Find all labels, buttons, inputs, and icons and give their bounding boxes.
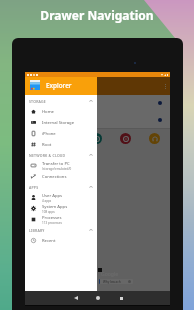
staticText: Connections bbox=[42, 174, 67, 180]
staticText: Explorer bbox=[46, 81, 72, 90]
button[interactable]: Back bbox=[67, 291, 85, 305]
button[interactable]: Recent apps bbox=[112, 291, 130, 305]
staticText: LIBRARY bbox=[29, 228, 45, 233]
staticText: 2.0 GB bbox=[29, 118, 39, 122]
staticText: System Apps bbox=[42, 204, 68, 210]
staticText: /storage/emulated/0 bbox=[42, 167, 72, 171]
button[interactable]: NETWORK & CLOUD bbox=[25, 150, 97, 160]
button[interactable]: Recent bbox=[25, 235, 97, 246]
button[interactable]: APPS bbox=[25, 182, 97, 192]
staticText: iPhone bbox=[42, 131, 56, 137]
staticText: Internal Storage bbox=[42, 120, 74, 126]
staticText: NETWORK & CLOUD bbox=[29, 153, 66, 158]
button[interactable]: LIBRARY bbox=[25, 225, 97, 235]
staticText: Transfer to PC bbox=[42, 161, 70, 167]
staticText: Home bbox=[42, 109, 54, 115]
staticText: Drawer Navigation bbox=[40, 7, 154, 23]
staticText: 108 apps bbox=[42, 210, 55, 214]
staticText: User Apps bbox=[42, 193, 63, 199]
button[interactable]: Internal Storage bbox=[25, 117, 97, 128]
button[interactable]: Home bbox=[25, 106, 97, 117]
staticText: APPS bbox=[29, 185, 39, 190]
button[interactable]: User Apps bbox=[25, 192, 97, 203]
button[interactable]: System Apps bbox=[25, 203, 97, 214]
staticText: 4 apps bbox=[42, 199, 52, 203]
staticText: STORAGE bbox=[29, 99, 46, 104]
button[interactable]: Processes bbox=[25, 214, 97, 225]
button[interactable]: Home bbox=[89, 291, 107, 305]
button[interactable]: Connections bbox=[25, 171, 97, 182]
button[interactable]: Root bbox=[25, 139, 97, 150]
button[interactable]: iPhone bbox=[25, 128, 97, 139]
button[interactable]: Transfer to PC bbox=[25, 160, 97, 171]
staticText: Processes bbox=[42, 215, 62, 221]
button[interactable]: STORAGE bbox=[25, 96, 97, 106]
staticText: Google bbox=[101, 271, 119, 278]
staticText: Root bbox=[42, 142, 52, 148]
staticText: Why low ach bbox=[103, 280, 121, 284]
staticText: Recent bbox=[42, 238, 56, 244]
staticText: 113 processes bbox=[42, 221, 62, 225]
